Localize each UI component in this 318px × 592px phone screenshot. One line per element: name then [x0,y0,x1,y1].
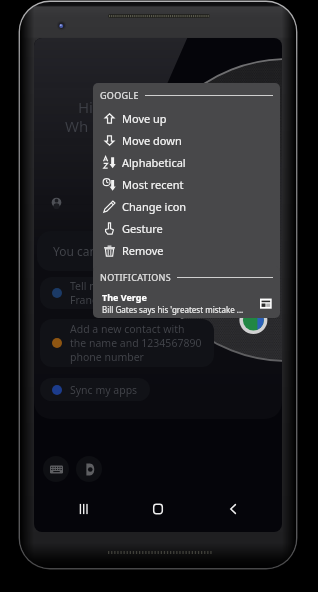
staticText: Most recent [122,177,184,192]
staticText: Add a new contact with [70,322,185,336]
staticText: GOOGLE [100,89,139,101]
staticText: Alphabetical [122,155,186,170]
staticText: Francisco [70,293,117,307]
button[interactable]: Gesture [93,217,280,239]
staticText: The Verge [102,291,147,303]
button[interactable]: Recents [59,494,109,524]
button[interactable]: Sync my apps [40,378,150,401]
button[interactable]: Add a new contact with [40,319,214,367]
button[interactable]: Most recent [93,173,280,195]
staticText: Remove [122,243,164,258]
staticText: You can say [53,243,119,259]
button[interactable]: Alphabetical [93,151,280,173]
button[interactable]: The Verge [93,288,280,318]
button[interactable]: You can say [37,231,187,271]
staticText: Move down [122,133,182,148]
button[interactable]: Keyboard [43,456,69,482]
staticText: Gesture [122,221,163,236]
staticText: phone number [70,350,144,364]
staticText: Tell me [70,279,105,293]
button[interactable]: Home [133,494,183,524]
button[interactable]: Move up [93,107,280,129]
button[interactable]: Back [208,494,258,524]
staticText: Change icon [122,199,187,214]
staticText: NOTIFICATIONS [100,271,171,283]
button[interactable]: Account [50,196,62,208]
button[interactable]: Assistant [76,456,102,482]
staticText: the name and 1234567890 [70,336,202,350]
staticText: Sync my apps [70,383,138,397]
staticText: Hi [78,97,93,117]
button[interactable]: Move down [93,129,280,151]
staticText: Wh [65,116,89,136]
staticText: Move up [122,111,167,126]
staticText: Bill Gates says his 'greatest mistake ..… [102,304,244,315]
button[interactable]: Change icon [93,195,280,217]
button[interactable]: Remove [93,239,280,261]
button[interactable]: Tell me [40,277,129,309]
